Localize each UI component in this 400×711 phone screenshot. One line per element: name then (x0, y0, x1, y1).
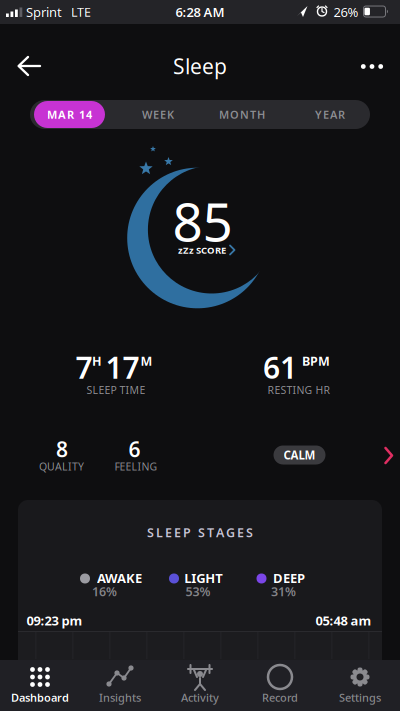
staticText: LIGHT (184, 569, 223, 587)
staticText: 16% (92, 583, 117, 600)
staticText: 17 (105, 347, 139, 387)
staticText: S L E E P S T A G E S (147, 524, 253, 541)
staticText: 7 (75, 347, 92, 387)
staticText: M (140, 352, 152, 369)
staticText: zZz SCORE (178, 243, 226, 256)
staticText: 53% (185, 583, 210, 600)
staticText: 05:48 am (315, 612, 371, 629)
button[interactable]: More (358, 56, 386, 76)
staticText: M A R 1 4 (47, 107, 92, 122)
staticText: 8 (56, 435, 68, 463)
staticText: Dashboard (11, 690, 69, 705)
button[interactable]: Activity (160, 660, 240, 711)
button[interactable]: Next (381, 443, 397, 467)
staticText: Sprint (26, 3, 62, 21)
staticText: SLEEP TIME (86, 383, 145, 397)
button[interactable]: CALM (273, 445, 325, 464)
staticText: Insights (99, 690, 141, 705)
staticText: RESTING HR (267, 383, 330, 397)
staticText: LTE (71, 3, 91, 20)
staticText: Record (262, 690, 298, 705)
staticText: QUALITY (39, 459, 84, 474)
staticText: W E E K (142, 107, 174, 122)
button[interactable]: Back (16, 56, 43, 76)
staticText: BPM (302, 352, 330, 369)
staticText: CALM (283, 447, 315, 463)
staticText: Y E A R (315, 107, 345, 122)
staticText: AWAKE (97, 569, 142, 587)
staticText: H (92, 352, 102, 369)
button[interactable]: Settings (320, 660, 400, 711)
button[interactable]: Insights (80, 660, 160, 711)
staticText: 6:28 AM (175, 3, 224, 21)
button[interactable]: Y E A R (291, 100, 369, 129)
button[interactable]: Dashboard (0, 660, 80, 711)
staticText: 85 (172, 185, 232, 257)
staticText: 09:23 pm (26, 612, 82, 629)
staticText: M O N T H (219, 107, 265, 122)
staticText: 26% (333, 3, 358, 21)
staticText: 31% (271, 583, 296, 600)
button[interactable]: M A R 1 4 (34, 101, 105, 128)
staticText: DEEP (273, 569, 305, 587)
staticText: Settings (339, 690, 381, 705)
staticText: 6 (128, 435, 140, 463)
staticText: Sleep (173, 52, 227, 80)
button[interactable]: W E E K (118, 100, 198, 129)
button[interactable]: M O N T H (202, 100, 282, 129)
button[interactable]: zZz SCORE (168, 243, 240, 257)
staticText: FEELING (114, 459, 157, 474)
staticText: 61 (263, 347, 297, 387)
staticText: Activity (181, 690, 219, 705)
button[interactable]: Record (240, 660, 320, 711)
